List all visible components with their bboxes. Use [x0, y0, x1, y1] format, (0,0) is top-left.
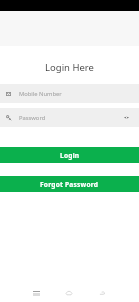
- button[interactable]: Back: [95, 286, 109, 300]
- button[interactable]: Password: [0, 108, 139, 127]
- staticText: Forgot Password: [40, 180, 99, 189]
- button[interactable]: Mobile Number: [0, 84, 139, 103]
- button[interactable]: Recent apps: [29, 286, 43, 300]
- staticText: Mobile Number: [19, 90, 62, 98]
- button[interactable]: Login: [0, 147, 139, 163]
- button[interactable]: Show password: [124, 116, 129, 119]
- button[interactable]: Home: [62, 286, 76, 300]
- staticText: Login Here: [0, 61, 139, 74]
- staticText: Login: [60, 151, 80, 160]
- staticText: Password: [19, 114, 46, 122]
- button[interactable]: Forgot Password: [0, 176, 139, 192]
